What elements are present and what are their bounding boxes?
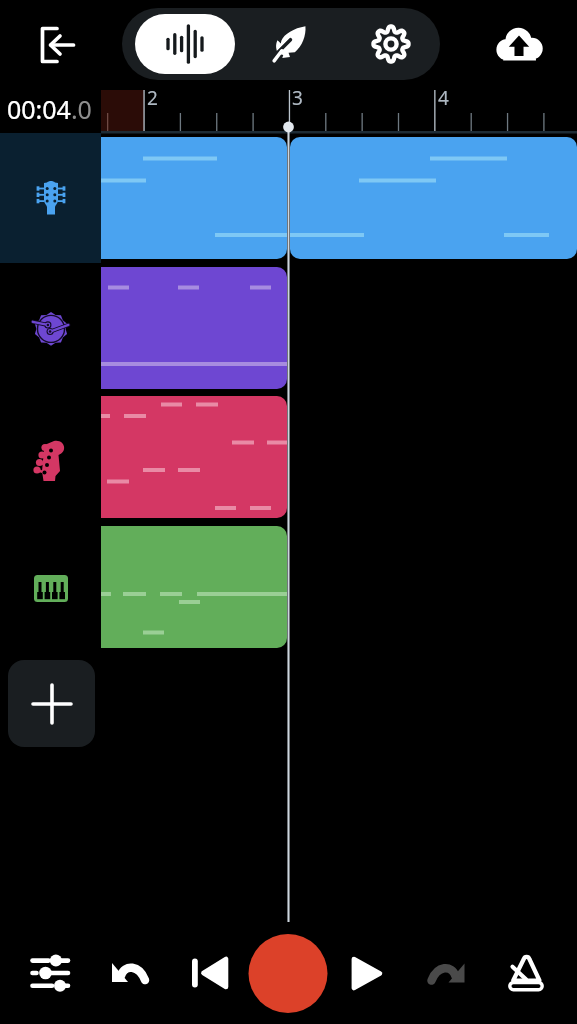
button[interactable]: Audio editor	[135, 14, 235, 74]
staticText: 00:04.0	[7, 92, 92, 126]
button[interactable]: Skip to start	[178, 941, 242, 1005]
button[interactable]: Settings	[354, 14, 428, 74]
button[interactable]: Metronome	[494, 941, 558, 1005]
button[interactable]: Record	[249, 934, 328, 1013]
button[interactable]: Guitar track	[0, 133, 101, 263]
button[interactable]: Add track	[8, 660, 95, 747]
button[interactable]: Exit project	[23, 16, 91, 74]
staticText: 3	[292, 85, 303, 111]
button[interactable]: Mixer	[18, 941, 82, 1005]
button[interactable]: Undo	[97, 941, 161, 1005]
button[interactable]: Drums track	[0, 263, 101, 393]
button[interactable]: Bass track	[0, 393, 101, 523]
button[interactable]: Keys track	[0, 523, 101, 653]
button[interactable]: Lyrics	[253, 14, 327, 74]
button[interactable]: Upload to cloud	[485, 19, 553, 77]
staticText: 4	[438, 85, 449, 111]
button[interactable]: Play	[334, 941, 398, 1005]
staticText: 2	[147, 85, 158, 111]
button[interactable]: Redo	[415, 941, 479, 1005]
